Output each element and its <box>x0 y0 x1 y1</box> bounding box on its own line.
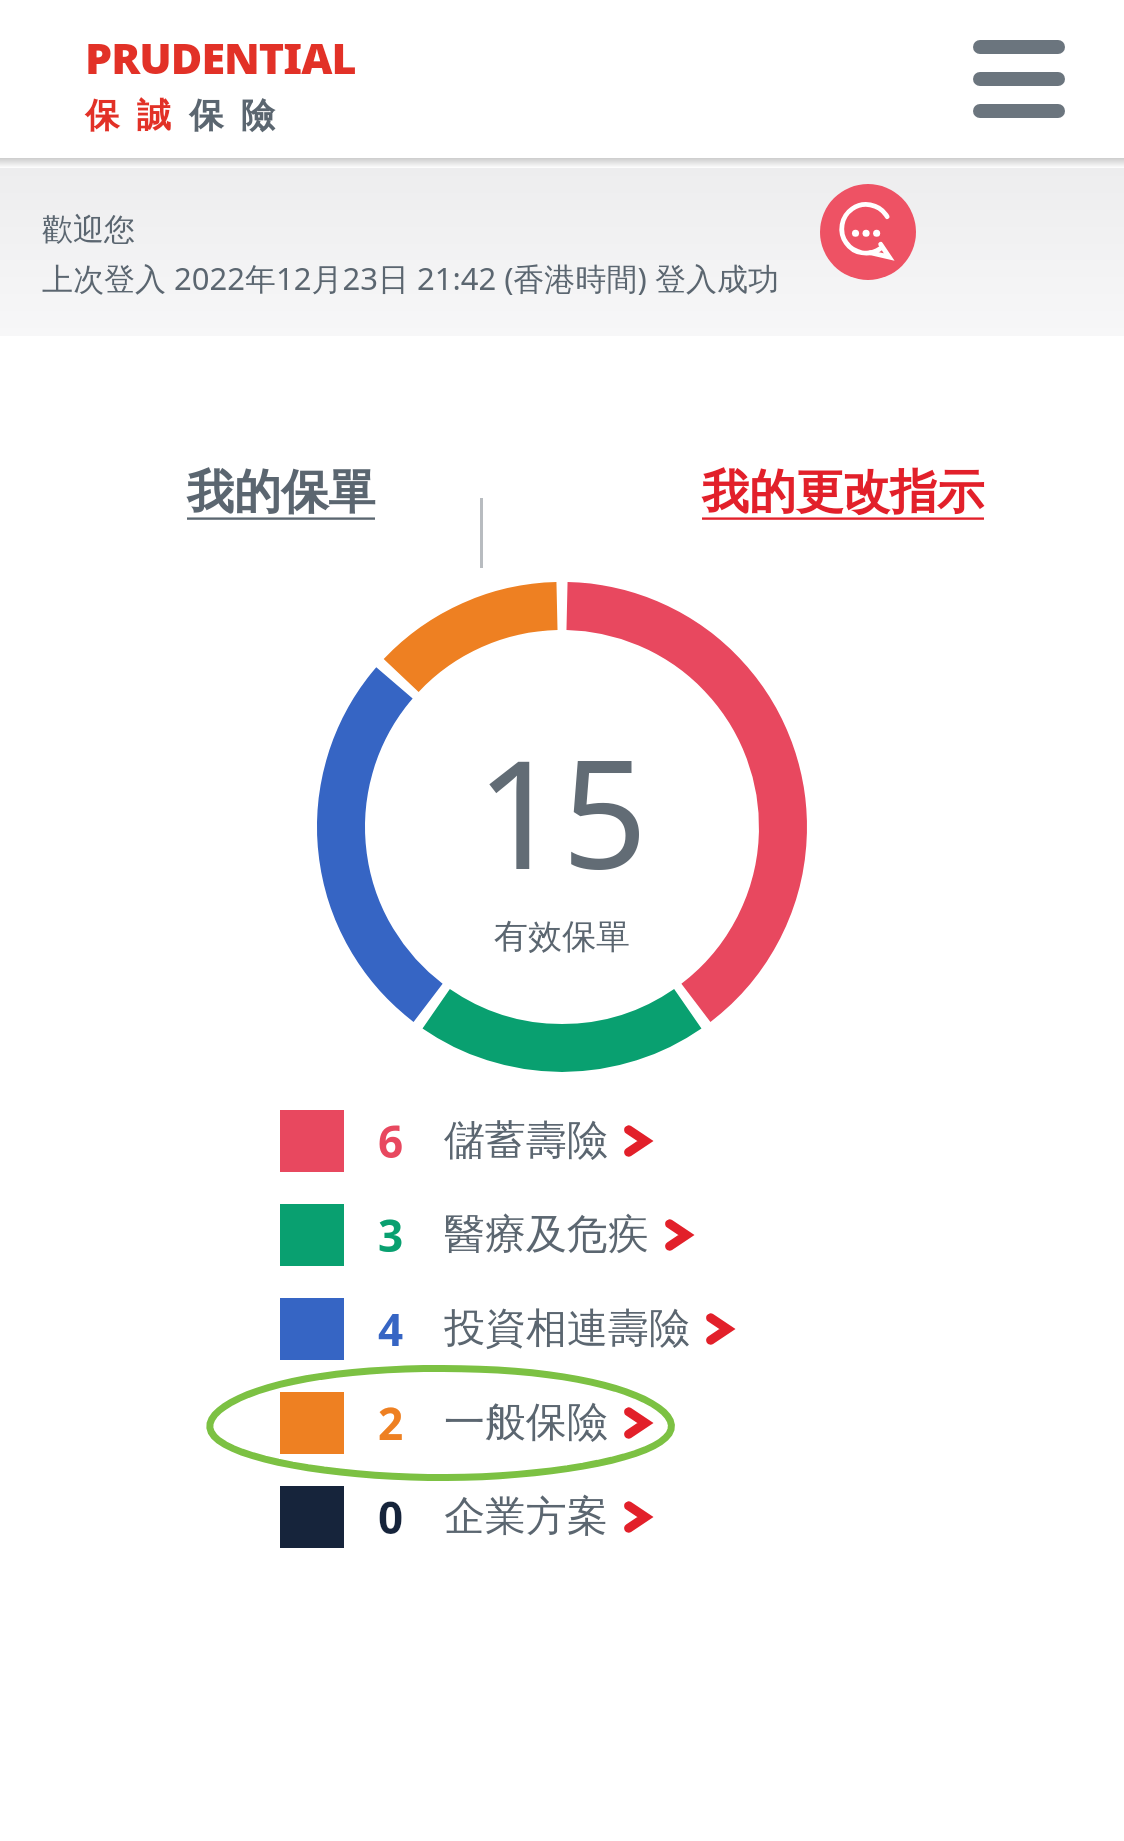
staticText: 保 誠 <box>85 91 189 137</box>
button[interactable]: Menu <box>964 29 1074 129</box>
staticText: 醫療及危疾 <box>444 1209 649 1261</box>
button[interactable]: 我的更改指示 <box>562 432 1124 552</box>
staticText: 3 <box>378 1205 404 1265</box>
staticText: 上次登入 2022年12月23日 21:42 (香港時間) 登入成功 <box>42 257 779 299</box>
staticText: 歡迎您 <box>42 210 135 249</box>
staticText: 6 <box>378 1111 404 1171</box>
staticText: 0 <box>378 1487 404 1547</box>
staticText: 企業方案 <box>444 1491 608 1543</box>
staticText: 我的保單 <box>187 463 375 522</box>
button[interactable]: 6 <box>0 1110 1124 1172</box>
button[interactable]: 0 <box>0 1486 1124 1548</box>
staticText: 投資相連壽險 <box>444 1303 690 1355</box>
button[interactable]: 4 <box>0 1298 1124 1360</box>
staticText: 我的更改指示 <box>702 463 984 522</box>
staticText: 保 險 <box>189 91 275 137</box>
button[interactable]: Chat <box>820 184 916 280</box>
staticText: 一般保險 <box>444 1397 608 1449</box>
button[interactable]: 3 <box>0 1204 1124 1266</box>
button[interactable]: 我的保單 <box>0 432 562 552</box>
staticText: 15 <box>476 709 648 913</box>
staticText: 有效保單 <box>494 915 630 958</box>
staticText: PRUDENTIAL <box>85 28 356 87</box>
button[interactable]: 2 <box>0 1392 1124 1454</box>
staticText: 4 <box>378 1299 404 1359</box>
staticText: 2 <box>378 1393 404 1453</box>
staticText: 儲蓄壽險 <box>444 1115 608 1167</box>
